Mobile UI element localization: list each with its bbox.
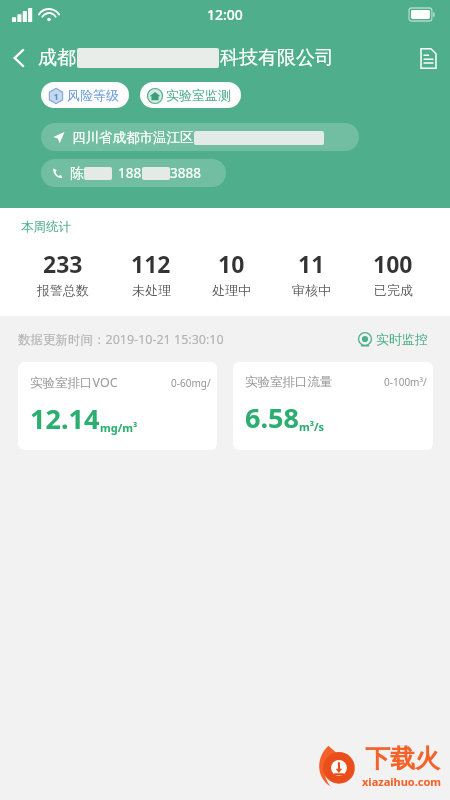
staticText: 成都 [38,46,76,70]
staticText: 0-100m³/ [384,375,427,389]
staticText: 本周统计 [21,219,71,235]
staticText: 10 [218,248,245,279]
staticText: 审核中 [292,282,331,298]
staticText: 12:00 [207,5,243,24]
staticText: 处理中 [212,282,251,298]
staticText: 0-60mg/ [171,376,211,390]
staticText: 风险等级 [67,87,119,103]
staticText: 实验室监测 [166,87,231,103]
button[interactable]: 陈 [41,159,226,187]
staticText: 数据更新时间：2019-10-21 15:30:10 [18,331,224,348]
staticText: 实验室排口流量 [245,374,333,390]
button[interactable]: 实时监控 [354,327,432,351]
button[interactable]: 11 [288,248,335,298]
button[interactable]: Back [0,38,38,78]
staticText: 3888 [170,164,201,182]
staticText: 报警总数 [37,282,89,298]
staticText: 陈 [70,165,84,182]
staticText: 科技有限公司 [220,46,334,70]
staticText: 11 [298,248,325,279]
button[interactable]: 实验室排口流量 [233,362,433,450]
button[interactable]: 实验室监测 [140,82,241,108]
staticText: m³/s [299,419,324,434]
staticText: 12.14 [30,400,100,437]
staticText: 下载火 [365,743,440,774]
staticText: 未处理 [132,282,171,298]
staticText: mg/m³ [100,420,138,435]
staticText: 实时监控 [376,331,428,347]
button[interactable]: 112 [127,248,175,298]
button[interactable]: 1 [41,82,129,108]
staticText: 四川省成都市温江区 [72,129,194,146]
button[interactable]: 100 [369,248,417,298]
staticText: xiazaihuo.com [362,774,442,789]
button[interactable]: 四川省成都市温江区 [41,123,359,151]
staticText: 100 [373,248,413,279]
staticText: 112 [131,248,171,279]
staticText: 6.58 [245,399,299,436]
staticText: 233 [43,248,83,279]
staticText: 188 [118,164,142,182]
staticText: 已完成 [374,282,413,298]
staticText: 1 [53,90,59,102]
button[interactable]: Report [406,38,450,78]
staticText: 实验室排口VOC [30,374,118,391]
button[interactable]: 10 [208,248,255,298]
button[interactable]: 实验室排口VOC [18,362,217,450]
button[interactable]: 233 [33,248,93,298]
